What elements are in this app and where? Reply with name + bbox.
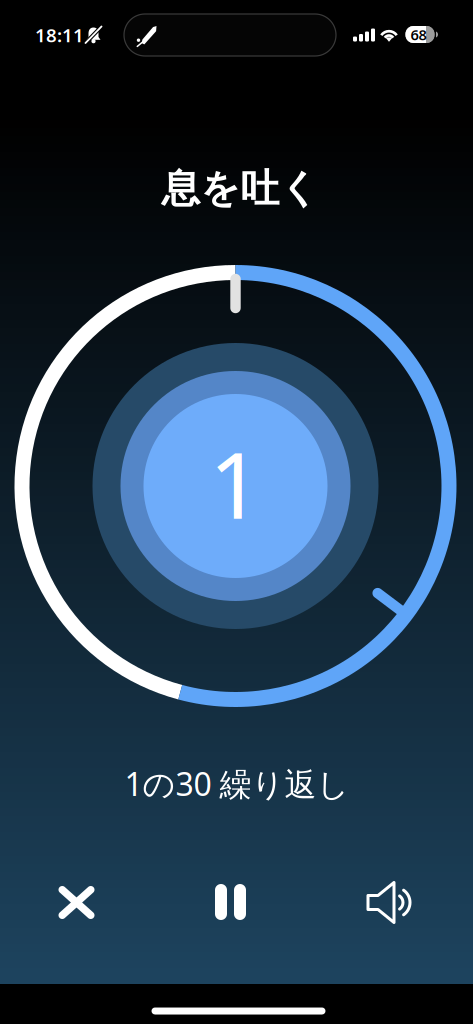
button[interactable]: Sound (339, 867, 439, 937)
staticText: 18:11 (35, 23, 84, 47)
staticText: 1 (209, 422, 262, 544)
staticText: 1の30 繰り返し (124, 762, 349, 805)
button[interactable]: End session (26, 867, 126, 937)
staticText: 68 (410, 25, 426, 44)
button[interactable]: Pause (180, 867, 280, 937)
staticText: 息を吐く (161, 165, 319, 212)
